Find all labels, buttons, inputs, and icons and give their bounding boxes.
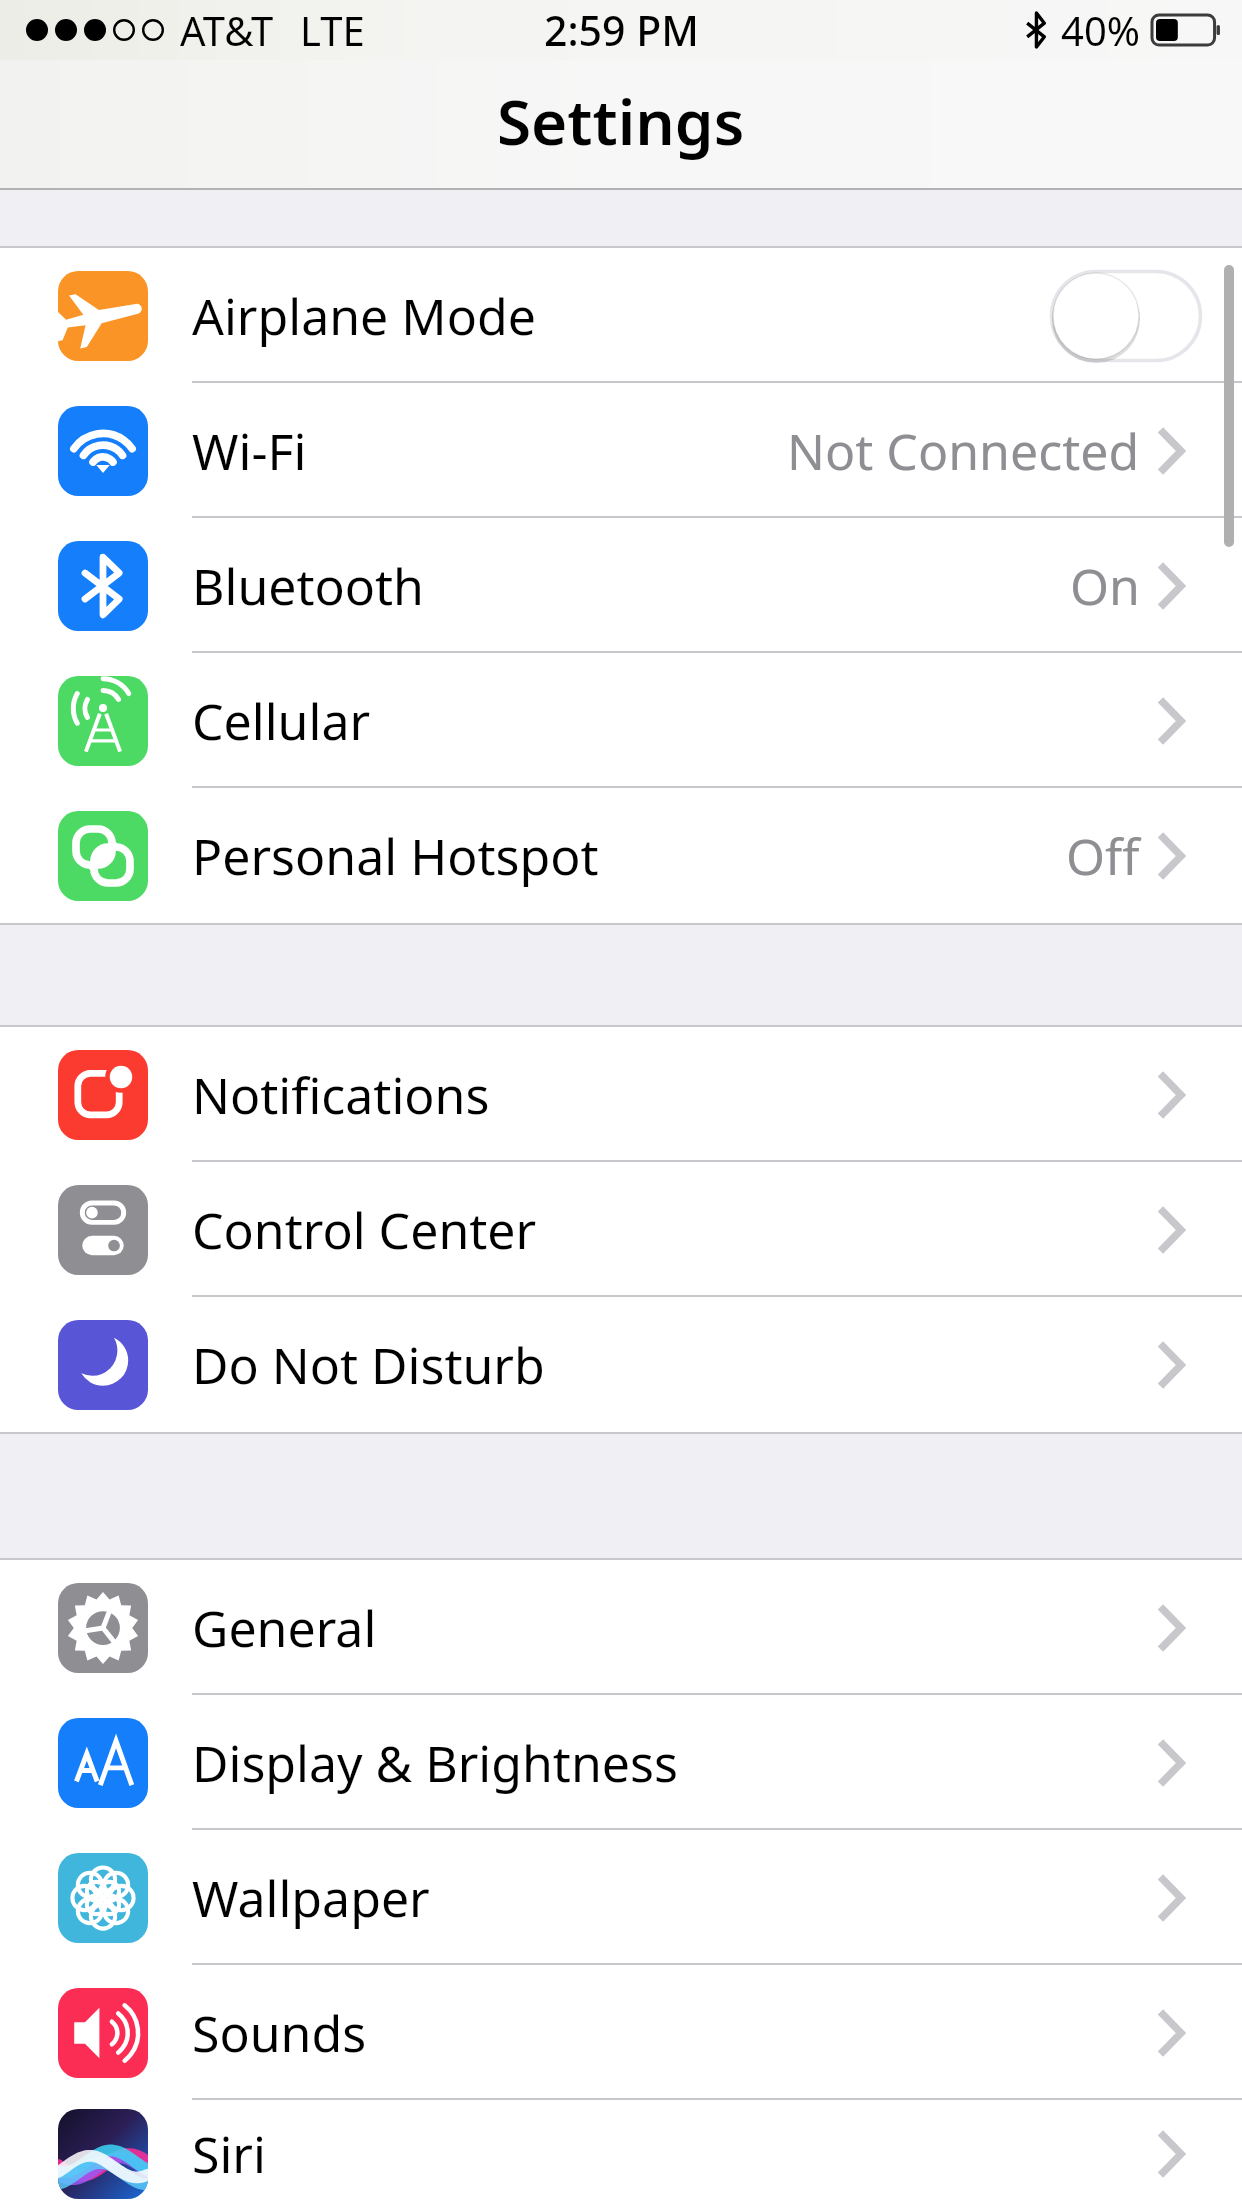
staticText: Not Connected — [787, 417, 1140, 485]
button[interactable]: Wallpaper — [0, 1830, 1242, 1965]
staticText: LTE — [300, 3, 365, 57]
staticText: Notifications — [192, 1061, 490, 1129]
button[interactable]: Notifications — [0, 1027, 1242, 1162]
button[interactable]: Siri — [0, 2100, 1242, 2208]
button[interactable]: Personal Hotspot — [0, 788, 1242, 923]
button[interactable]: Airplane Mode toggle — [1050, 270, 1202, 362]
button[interactable]: Display & Brightness — [0, 1695, 1242, 1830]
staticText: Cellular — [192, 687, 371, 755]
staticText: 40% — [1061, 3, 1140, 57]
staticText: Off — [1066, 822, 1140, 890]
staticText: Siri — [192, 2120, 266, 2188]
button[interactable]: Cellular — [0, 653, 1242, 788]
staticText: Settings — [497, 79, 745, 163]
button[interactable]: Airplane Mode — [0, 248, 1242, 383]
staticText: General — [192, 1594, 377, 1662]
staticText: AT&T — [180, 3, 274, 57]
staticText: 2:59 PM — [544, 2, 699, 58]
staticText: Do Not Disturb — [192, 1331, 545, 1399]
staticText: On — [1070, 552, 1140, 620]
staticText: Control Center — [192, 1196, 537, 1264]
button[interactable]: Sounds — [0, 1965, 1242, 2100]
staticText: Wallpaper — [192, 1864, 430, 1932]
button[interactable]: Control Center — [0, 1162, 1242, 1297]
staticText: Personal Hotspot — [192, 822, 599, 890]
staticText: Sounds — [192, 1999, 367, 2067]
button[interactable]: Do Not Disturb — [0, 1297, 1242, 1432]
button[interactable]: General — [0, 1560, 1242, 1695]
staticText: Airplane Mode — [192, 282, 536, 350]
button[interactable]: Wi-Fi — [0, 383, 1242, 518]
staticText: Bluetooth — [192, 552, 424, 620]
staticText: Wi-Fi — [192, 417, 307, 485]
staticText: Display & Brightness — [192, 1729, 678, 1797]
button[interactable]: Bluetooth — [0, 518, 1242, 653]
